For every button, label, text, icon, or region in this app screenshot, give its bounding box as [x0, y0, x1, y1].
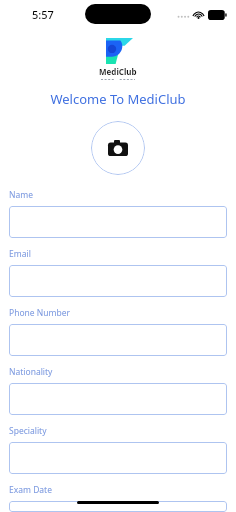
staticText: Exam Date [9, 484, 52, 496]
button[interactable]: Add photo [91, 121, 145, 175]
staticText: Welcome To MediClub [0, 90, 236, 108]
staticText: 5:57 [32, 7, 54, 22]
button[interactable] [9, 265, 227, 297]
button[interactable] [9, 501, 227, 512]
staticText: Phone Number [9, 307, 70, 319]
staticText: Name [9, 189, 33, 201]
staticText: Speciality [9, 425, 47, 437]
staticText: MediClub [99, 66, 137, 77]
staticText: Nationality [9, 366, 53, 378]
button[interactable] [9, 442, 227, 474]
staticText: Email [9, 248, 31, 260]
button[interactable] [9, 324, 227, 356]
button[interactable] [9, 206, 227, 238]
button[interactable] [9, 383, 227, 415]
